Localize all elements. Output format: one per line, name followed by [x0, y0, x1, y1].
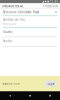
staticText: Senha [3, 39, 11, 43]
button[interactable]: Home [20, 91, 40, 100]
staticText: Selecione a Unidade Fiscal [3, 10, 39, 14]
staticText: Usuário [3, 30, 13, 34]
button[interactable]: Sentido de Via [3, 16, 57, 28]
staticText: UNIDADE FISCAL [2, 4, 23, 8]
staticText: Selecione [3, 22, 17, 26]
staticText: 12:45 [50, 0, 59, 3]
button[interactable]: Recent apps [40, 91, 60, 100]
staticText: Sentido de Via [3, 18, 24, 21]
staticText: Logar [47, 82, 54, 85]
button[interactable]: Senha [3, 37, 57, 46]
button[interactable]: Back [0, 91, 20, 100]
button[interactable]: Selecione a Unidade Fiscal [3, 9, 57, 16]
button[interactable]: Usuário [3, 28, 57, 37]
staticText: Bateria: 50% [2, 82, 19, 85]
button[interactable]: Logar [45, 80, 57, 87]
staticText: PREFEITURA [43, 4, 58, 8]
